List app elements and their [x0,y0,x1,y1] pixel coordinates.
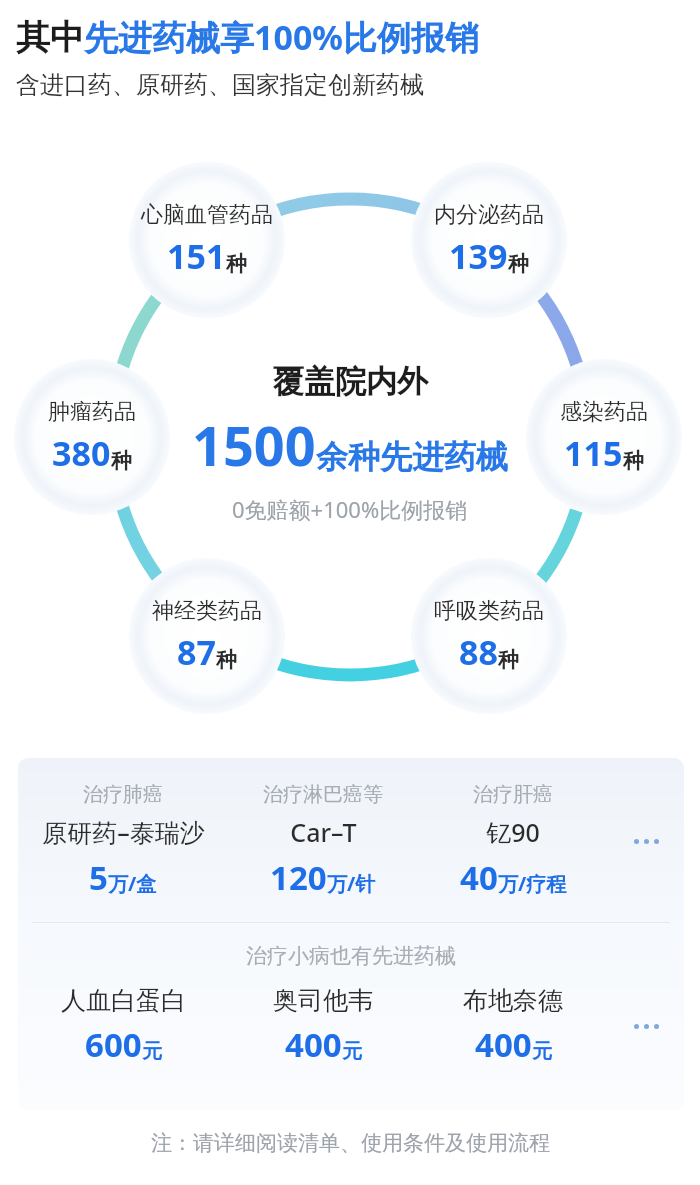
staticText: 151 [167,233,226,279]
staticText: 先进药械享100%比例报销 [84,14,480,60]
staticText: 种 [216,647,237,673]
staticText: 种 [498,647,519,673]
staticText: 380 [52,430,111,476]
staticText: 400 [285,1022,342,1067]
button[interactable]: 治疗肝癌 [418,782,608,900]
staticText: 种 [623,448,644,474]
staticText: 治疗淋巴癌等 [263,782,383,807]
staticText: 120 [270,855,327,900]
staticText: 0免赔额+100%比例报销 [232,494,468,524]
button[interactable]: 感染药品 [526,359,682,515]
staticText: 肿瘤药品 [48,398,136,426]
staticText: 注：请详细阅读清单、使用条件及使用流程 [151,1130,550,1156]
staticText: 40 [460,855,498,900]
staticText: 治疗小病也有先进药械 [246,943,456,969]
staticText: 139 [449,233,508,279]
staticText: 含进口药、原研药、国家指定创新药械 [16,70,424,100]
staticText: 覆盖院内外 [273,362,428,401]
button[interactable]: 布地奈德 [418,985,608,1067]
staticText: 万/盒 [108,870,157,897]
staticText: 治疗肝癌 [473,782,553,807]
staticText: 115 [564,430,623,476]
button[interactable]: 治疗淋巴癌等 [228,782,418,900]
button[interactable]: 内分泌药品 [411,162,567,318]
staticText: 感染药品 [560,398,648,426]
button[interactable]: 肿瘤药品 [14,359,170,515]
button[interactable]: More [628,833,665,850]
button[interactable]: 心脑血管药品 [129,162,285,318]
staticText: 钇90 [486,815,540,849]
staticText: 余种先进药械 [316,437,508,477]
staticText: 原研药–泰瑞沙 [42,815,205,849]
staticText: 400 [475,1022,532,1067]
staticText: 种 [111,448,132,474]
staticText: 1500 [192,408,316,482]
staticText: 神经类药品 [152,597,262,625]
button[interactable]: More [628,1018,665,1035]
staticText: 600 [85,1022,142,1067]
staticText: 5 [89,855,108,900]
staticText: 88 [459,629,498,675]
staticText: 种 [508,251,529,277]
button[interactable]: 呼吸类药品 [411,558,567,714]
staticText: 呼吸类药品 [434,597,544,625]
button[interactable]: 神经类药品 [129,558,285,714]
button[interactable]: 奥司他韦 [228,985,418,1067]
staticText: Car–T [290,815,357,849]
staticText: 奥司他韦 [273,985,373,1016]
staticText: 万/疗程 [498,870,567,897]
staticText: 人血白蛋白 [61,985,186,1016]
staticText: 其中 [16,16,84,59]
staticText: 万/针 [327,870,376,897]
staticText: 布地奈德 [463,985,563,1016]
staticText: 87 [177,629,216,675]
staticText: 元 [342,1039,362,1064]
button[interactable]: 人血白蛋白 [18,985,228,1067]
staticText: 种 [226,251,247,277]
staticText: 元 [532,1039,552,1064]
staticText: 治疗肺癌 [83,782,163,807]
button[interactable]: 治疗肺癌 [18,782,228,900]
staticText: 元 [142,1039,162,1064]
staticText: 心脑血管药品 [141,201,273,229]
staticText: 内分泌药品 [434,201,544,229]
